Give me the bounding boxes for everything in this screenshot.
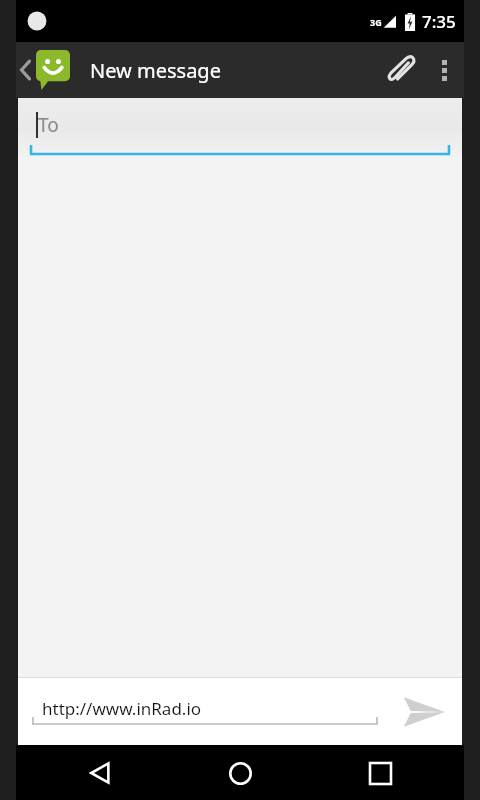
staticText: New message (90, 57, 221, 84)
button[interactable]: More options (424, 46, 464, 94)
staticText: 3G (370, 16, 382, 28)
button[interactable]: To (18, 98, 462, 158)
button[interactable]: Send (394, 682, 454, 742)
button[interactable]: Back (74, 747, 126, 799)
staticText: 7:35 (422, 10, 456, 33)
staticText: http://www.inRad.io (42, 697, 202, 720)
button[interactable]: Home (214, 747, 266, 799)
button[interactable]: Recent apps (354, 747, 406, 799)
staticText: To (38, 112, 59, 138)
button[interactable]: Navigate up (16, 42, 76, 98)
button[interactable]: http://www.inRad.io (28, 697, 382, 726)
button[interactable]: Attach (376, 46, 424, 94)
